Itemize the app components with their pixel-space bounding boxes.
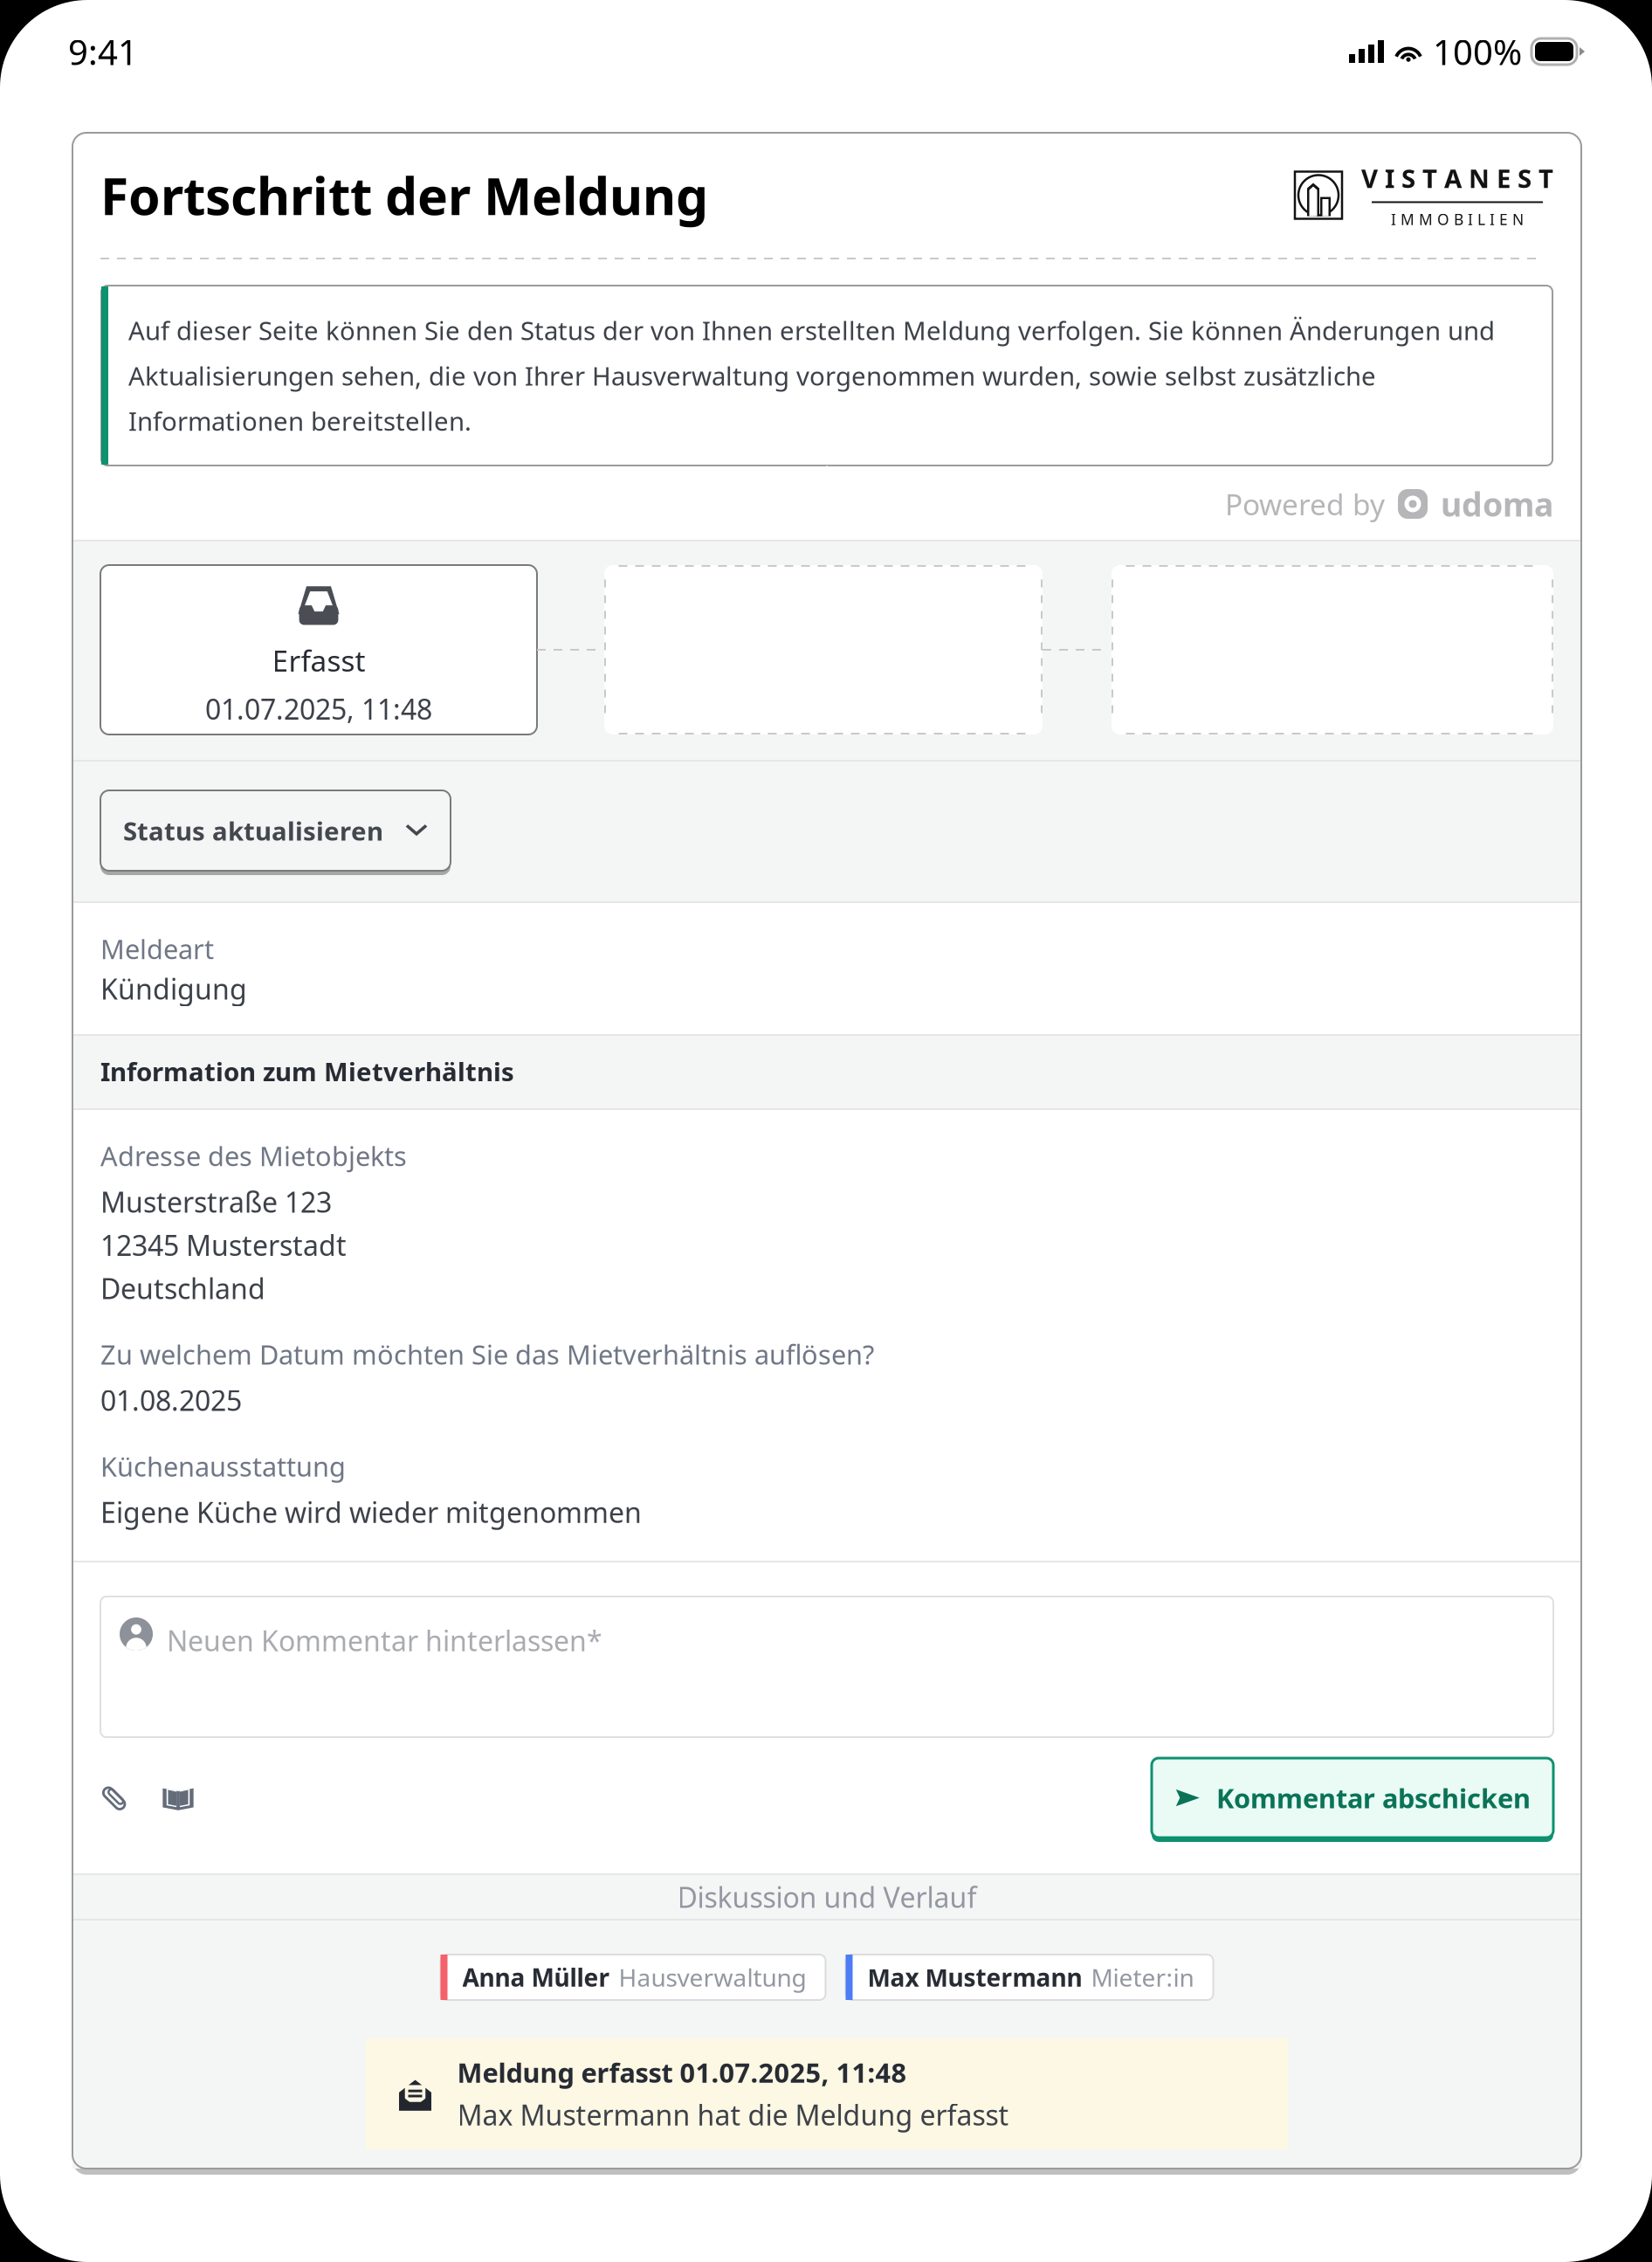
staticText: Hausverwaltung (619, 1961, 806, 1994)
button[interactable]: Datei anhängen (100, 1783, 130, 1813)
staticText: Meldeart (100, 931, 214, 967)
staticText: Max Mustermann (867, 1961, 1082, 1994)
staticText: Aktualisierungen sehen, die von Ihrer Ha… (128, 359, 1376, 393)
staticText: Diskussion und Verlauf (677, 1878, 977, 1916)
staticText: Neuen Kommentar hinterlassen* (167, 1622, 602, 1659)
staticText: Adresse des Mietobjekts (100, 1138, 407, 1174)
staticText: 01.08.2025 (100, 1382, 242, 1419)
button[interactable]: Status aktualisieren (100, 790, 451, 871)
staticText: Deutschland (100, 1270, 265, 1307)
staticText: Kündigung (100, 970, 247, 1007)
staticText: Meldung erfasst 01.07.2025, 11:48 (457, 2054, 907, 2090)
staticText: Küchenausstattung (100, 1448, 346, 1484)
staticText: Kommentar abschicken (1216, 1780, 1531, 1816)
staticText: Information zum Mietverhältnis (100, 1054, 514, 1088)
staticText: Musterstraße 123 (100, 1183, 332, 1220)
staticText: Max Mustermann hat die Meldung erfasst (457, 2096, 1009, 2133)
staticText: Fortschritt der Meldung (100, 161, 708, 229)
staticText: Eigene Küche wird wieder mitgenommen (100, 1494, 642, 1531)
staticText: 100% (1433, 28, 1522, 75)
staticText: Anna Müller (462, 1961, 610, 1994)
staticText: Mieter:in (1091, 1961, 1194, 1994)
button[interactable]: Kommentar abschicken (1152, 1758, 1553, 1838)
staticText: 01.07.2025, 11:48 (205, 690, 432, 727)
staticText: 12345 Musterstadt (100, 1226, 347, 1263)
staticText: Informationen bereitstellen. (128, 404, 472, 438)
staticText: Auf dieser Seite können Sie den Status d… (128, 313, 1495, 347)
staticText: udoma (1441, 482, 1553, 526)
staticText: Zu welchem Datum möchten Sie das Mietver… (100, 1336, 874, 1372)
button[interactable]: Textbausteine (160, 1779, 196, 1816)
staticText: Status aktualisieren (123, 814, 383, 848)
staticText: 9:41 (68, 28, 138, 75)
staticText: Powered by (1225, 485, 1385, 523)
staticText: I M M O B I L I E N (1391, 209, 1524, 229)
staticText: V I S T A N E S T (1361, 161, 1553, 195)
staticText: Erfasst (272, 641, 365, 680)
